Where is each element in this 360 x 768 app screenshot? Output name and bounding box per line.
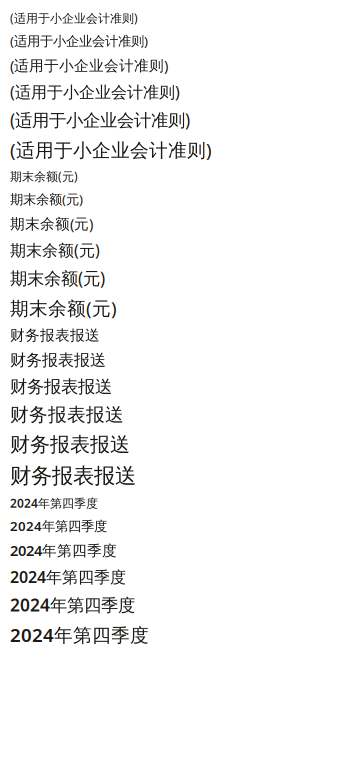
staticText: 期末余额(元) <box>10 214 93 233</box>
staticText: 财务报表报送 <box>10 376 112 397</box>
staticText: 2024年第四季度 <box>10 495 98 511</box>
staticText: (适用于小企业会计准则) <box>10 81 180 102</box>
staticText: 2024年第四季度 <box>10 622 149 647</box>
staticText: 财务报表报送 <box>10 350 106 370</box>
staticText: 2024年第四季度 <box>10 566 126 587</box>
staticText: 财务报表报送 <box>10 403 124 426</box>
staticText: 财务报表报送 <box>10 326 100 344</box>
staticText: 2024年第四季度 <box>10 541 117 560</box>
staticText: 期末余额(元) <box>10 296 117 320</box>
staticText: (适用于小企业会计准则) <box>10 10 138 26</box>
staticText: 2024年第四季度 <box>10 593 135 616</box>
staticText: 财务报表报送 <box>10 432 130 457</box>
staticText: (适用于小企业会计准则) <box>10 137 212 162</box>
staticText: 期末余额(元) <box>10 190 83 208</box>
staticText: (适用于小企业会计准则) <box>10 108 190 131</box>
staticText: 期末余额(元) <box>10 168 78 184</box>
staticText: 期末余额(元) <box>10 266 105 289</box>
staticText: 财务报表报送 <box>10 463 136 489</box>
staticText: (适用于小企业会计准则) <box>10 32 148 50</box>
staticText: (适用于小企业会计准则) <box>10 56 168 75</box>
staticText: 期末余额(元) <box>10 239 100 260</box>
staticText: 2024年第四季度 <box>10 517 107 535</box>
